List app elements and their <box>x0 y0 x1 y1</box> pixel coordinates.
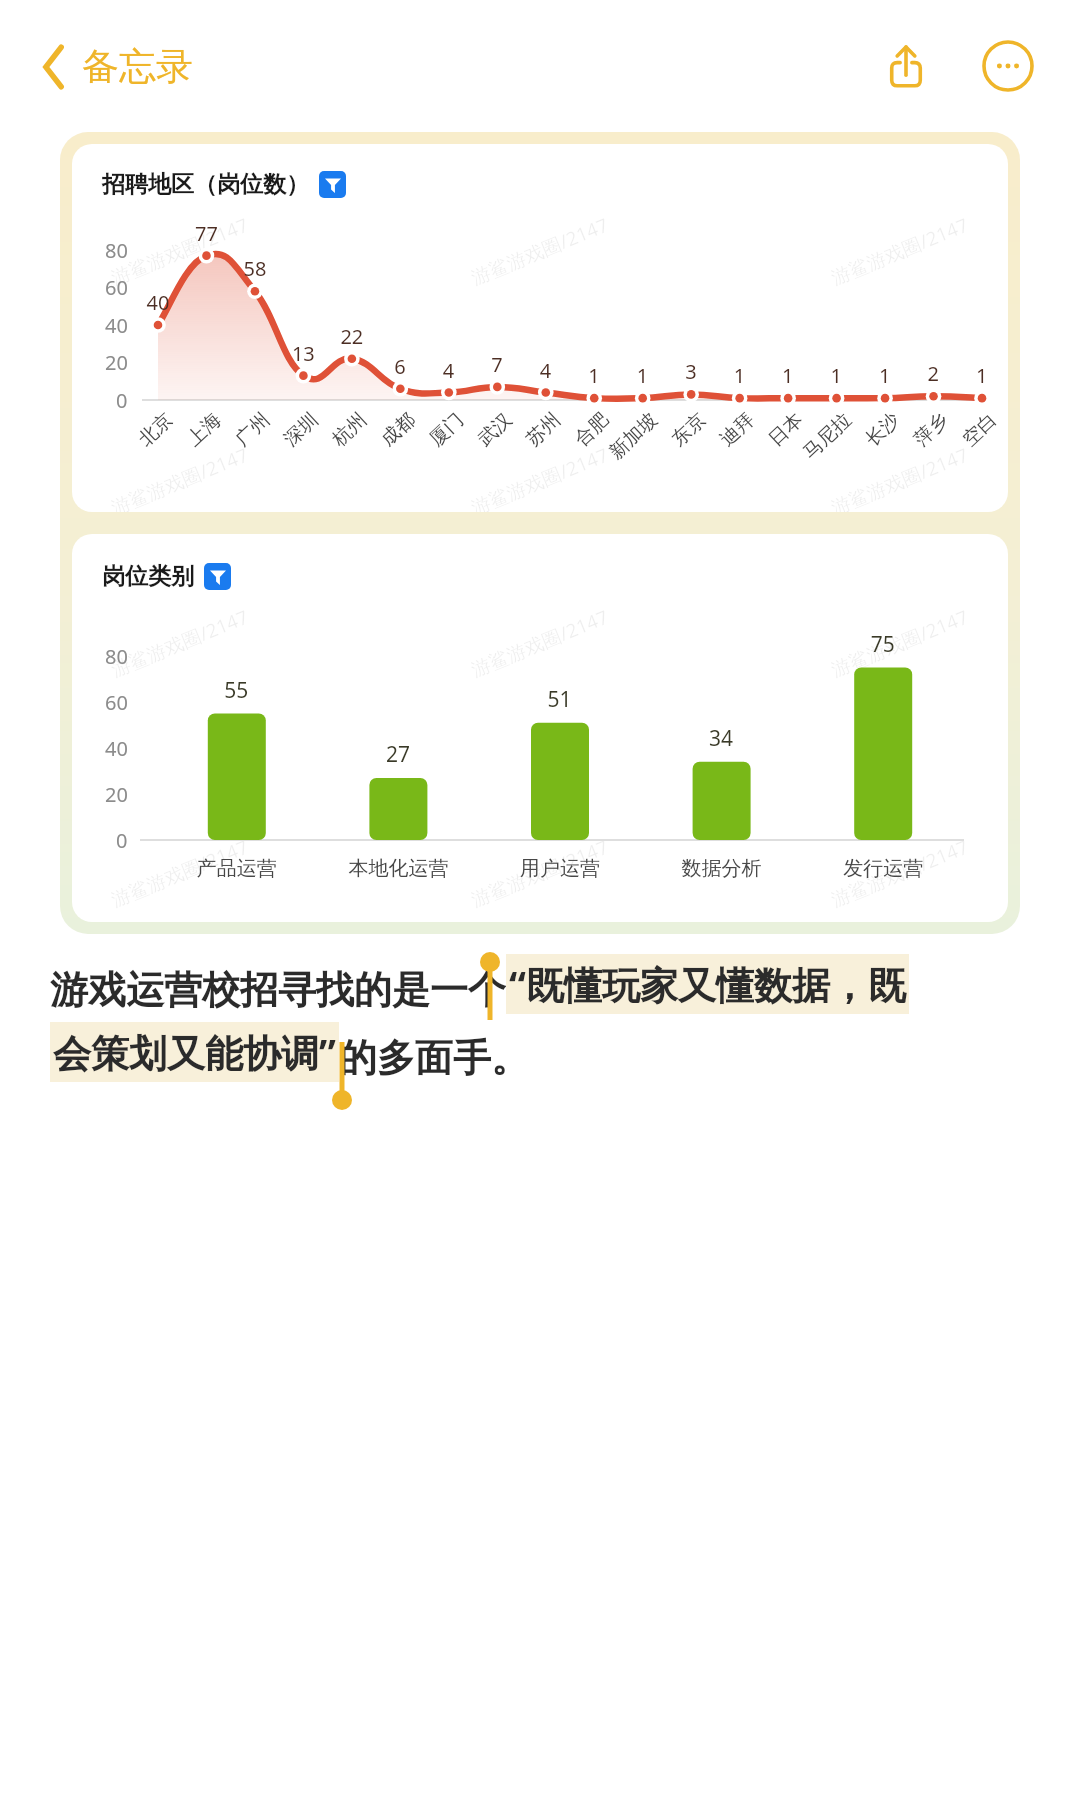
button[interactable]: 岗位类别 <box>72 534 1008 922</box>
staticText: 会策划又能协调” <box>53 1026 336 1078</box>
button[interactable]: Filter <box>204 563 231 590</box>
button[interactable]: Share <box>874 34 938 98</box>
staticText: 的多面手。 <box>339 1034 529 1082</box>
button[interactable]: Back <box>36 37 199 96</box>
button[interactable]: 招聘地区（岗位数） <box>72 144 1008 512</box>
staticText: 招聘地区（岗位数） <box>102 170 309 199</box>
staticText: 备忘录 <box>82 43 193 90</box>
button[interactable]: Filter <box>319 171 346 198</box>
staticText: “既懂玩家又懂数据，既 <box>509 958 906 1010</box>
staticText: 游戏运营校招寻找的是一个 <box>50 966 506 1014</box>
staticText: 岗位类别 <box>102 562 194 591</box>
button[interactable]: More options <box>976 34 1040 98</box>
